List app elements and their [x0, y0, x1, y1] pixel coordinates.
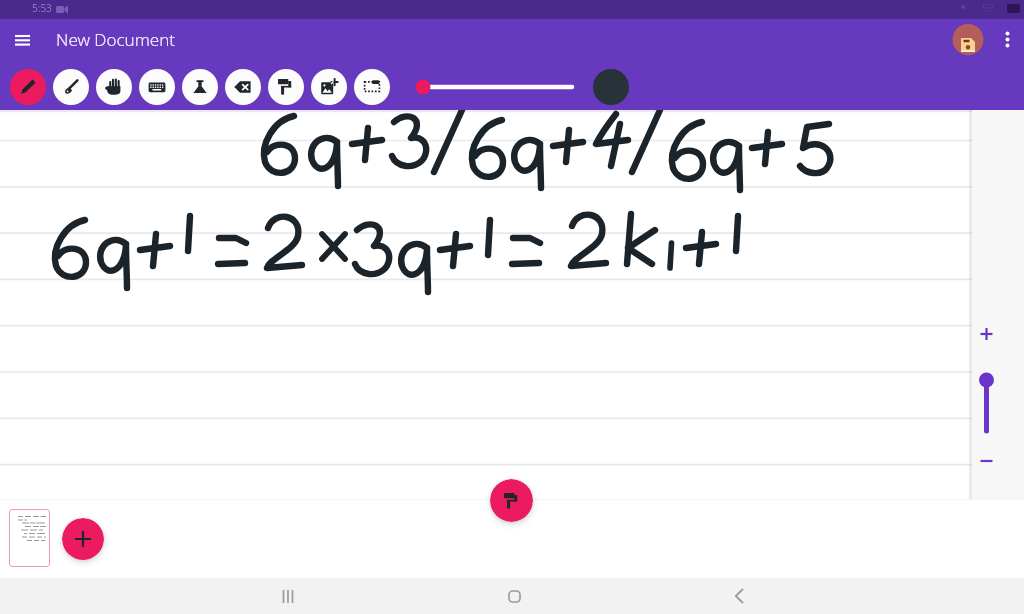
- button[interactable]: New Document: [56, 28, 176, 51]
- staticText: 5:53: [32, 1, 52, 15]
- button[interactable]: Back: [703, 578, 775, 614]
- button[interactable]: Save: [949, 22, 987, 60]
- button[interactable]: Recents: [252, 578, 324, 614]
- button[interactable]: Fill: [268, 69, 304, 105]
- button[interactable]: Lab: [182, 69, 218, 105]
- button[interactable]: Page thumbnail: [9, 509, 50, 567]
- button[interactable]: Brush: [53, 69, 89, 105]
- button[interactable]: Insert image: [311, 69, 347, 105]
- button[interactable]: More options: [992, 24, 1022, 54]
- button[interactable]: Keyboard: [139, 69, 175, 105]
- staticText: 59: [982, 1, 994, 15]
- button[interactable]: Colour: [593, 69, 629, 105]
- button[interactable]: Pen: [10, 69, 46, 105]
- button[interactable]: Home: [478, 578, 550, 614]
- button[interactable]: Add page: [62, 518, 104, 560]
- button[interactable]: Paint roller: [490, 479, 533, 522]
- button[interactable]: Select: [354, 69, 390, 105]
- button[interactable]: Pan: [96, 69, 132, 105]
- button[interactable]: Navigation menu: [4, 22, 40, 58]
- button[interactable]: Stroke width: [408, 76, 584, 98]
- button[interactable]: Eraser: [225, 69, 261, 105]
